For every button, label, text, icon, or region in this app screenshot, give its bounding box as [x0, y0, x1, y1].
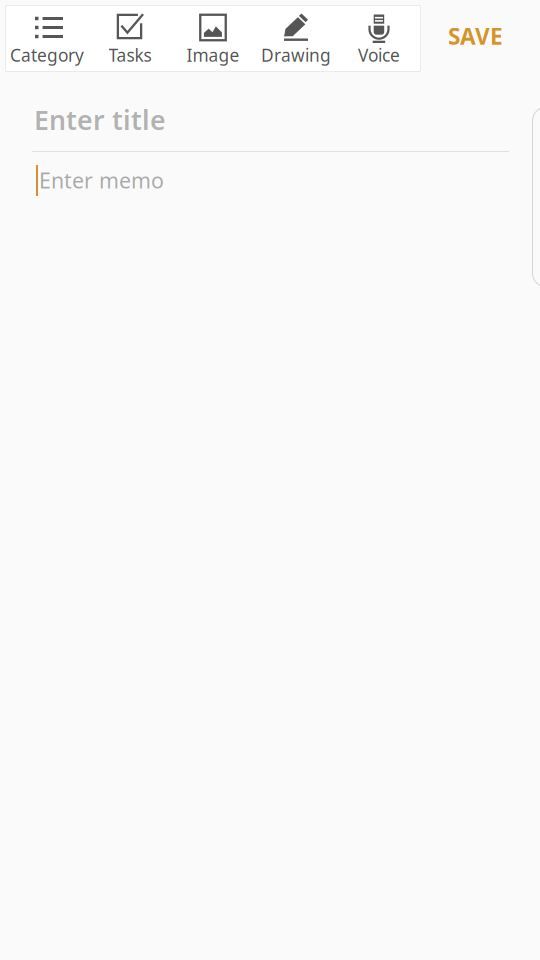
button[interactable]: Enter memo [32, 157, 509, 203]
staticText: Enter title [34, 102, 166, 137]
button[interactable]: Voice [337, 5, 420, 71]
button[interactable]: Tasks [88, 5, 171, 71]
button[interactable]: Category [5, 5, 88, 71]
staticText: SAVE [448, 21, 503, 51]
staticText: Tasks [108, 43, 151, 66]
staticText: Drawing [261, 43, 331, 66]
button[interactable]: SAVE [420, 10, 530, 62]
button[interactable]: Image [171, 5, 254, 71]
button[interactable]: Enter title [32, 96, 509, 152]
staticText: Image [186, 43, 239, 66]
staticText: Category [10, 43, 84, 66]
staticText: Voice [358, 43, 400, 66]
staticText: Enter memo [39, 166, 164, 194]
button[interactable]: Drawing [254, 5, 337, 71]
